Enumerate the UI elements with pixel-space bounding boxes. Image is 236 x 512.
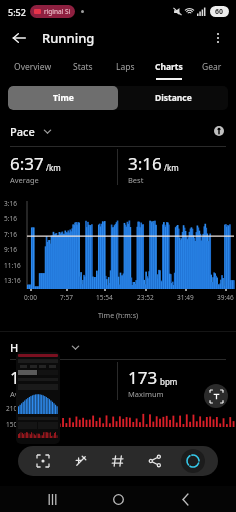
staticText: bpm xyxy=(160,376,178,387)
button[interactable]: Home xyxy=(103,486,133,512)
staticText: 31:49 xyxy=(177,293,194,302)
staticText: 23:52 xyxy=(137,293,154,302)
staticText: H xyxy=(10,340,19,355)
staticText: 0:00 xyxy=(24,293,37,302)
staticText: 5:16 xyxy=(4,214,17,223)
button[interactable]: Pace xyxy=(10,124,52,139)
staticText: /km xyxy=(46,162,61,173)
staticText: Time xyxy=(53,92,74,104)
staticText: Average xyxy=(10,175,39,185)
staticText: 210 xyxy=(6,404,18,413)
button[interactable]: Overview xyxy=(4,54,61,80)
button[interactable]: Recents xyxy=(37,486,67,512)
staticText: Pace xyxy=(10,124,35,139)
staticText: 173 xyxy=(128,366,158,389)
staticText: 39:46 xyxy=(217,293,234,302)
staticText: Charts xyxy=(155,61,183,73)
staticText: 6:37 xyxy=(10,152,44,175)
staticText: riginal Si xyxy=(44,7,71,16)
staticText: 9:16 xyxy=(4,245,17,254)
staticText: Laps xyxy=(116,61,135,73)
button[interactable]: Crop xyxy=(31,449,55,473)
button[interactable]: Charts xyxy=(145,54,192,80)
staticText: 7:16 xyxy=(4,230,17,239)
staticText: Av xyxy=(10,389,19,399)
staticText: 11:16 xyxy=(4,261,21,270)
button[interactable]: Gear xyxy=(192,54,232,80)
staticText: 60 xyxy=(215,7,224,17)
staticText: 3:16 xyxy=(128,152,162,175)
staticText: 3:16 xyxy=(4,199,17,208)
button[interactable]: Draw xyxy=(69,449,93,473)
staticText: Running xyxy=(42,29,95,47)
button[interactable]: Info xyxy=(212,124,226,138)
button[interactable]: Laps xyxy=(105,54,145,80)
staticText: Best xyxy=(128,175,144,185)
staticText: /km xyxy=(164,162,179,173)
staticText: Distance xyxy=(155,92,192,104)
button[interactable]: Time xyxy=(8,86,118,110)
button[interactable]: Screenshot preview xyxy=(16,352,60,444)
staticText: Stats xyxy=(73,61,93,73)
staticText: Time (h:m:s) xyxy=(0,311,236,321)
button[interactable]: Tag xyxy=(106,449,130,473)
staticText: Overview xyxy=(14,61,52,73)
button[interactable]: Extract text xyxy=(204,384,228,408)
button[interactable]: Back xyxy=(6,25,32,51)
staticText: 5:52 xyxy=(8,6,26,18)
staticText: Maximum xyxy=(128,389,164,399)
button[interactable]: Smart select xyxy=(181,449,205,473)
button[interactable]: Distance xyxy=(118,86,228,110)
button[interactable]: Share xyxy=(143,449,167,473)
button[interactable]: Back xyxy=(170,486,200,512)
button[interactable]: More options xyxy=(206,26,230,50)
button[interactable]: Stats xyxy=(61,54,105,80)
staticText: 7:57 xyxy=(60,293,73,302)
staticText: 15:54 xyxy=(96,293,113,302)
staticText: Gear xyxy=(202,61,222,73)
staticText: 150 xyxy=(6,420,18,427)
staticText: 13:16 xyxy=(4,276,21,285)
staticText: 1 xyxy=(10,366,20,389)
